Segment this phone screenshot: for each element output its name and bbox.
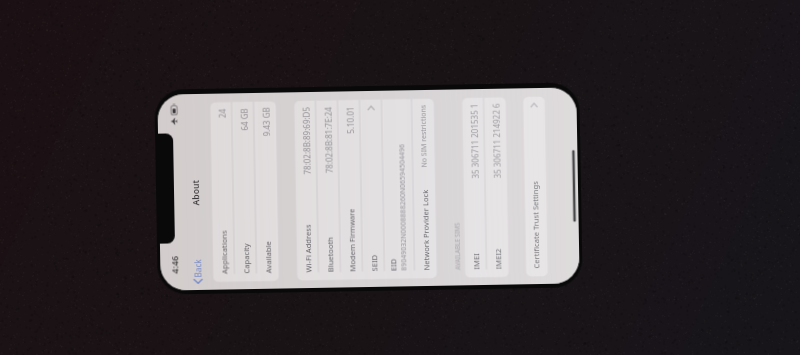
button[interactable]: EID [382,99,415,279]
button[interactable]: Capacity [232,101,257,282]
button[interactable]: Back [188,255,207,288]
staticText: 89049032N0008888260N06594504496 [397,144,409,271]
staticText: Back [192,258,203,278]
button[interactable]: Wi-Fi Address [294,100,319,281]
button[interactable]: IMEI2 [484,97,509,277]
button[interactable]: Certificate Trust Settings [523,96,548,277]
staticText: Wi-Fi Address [302,223,313,273]
staticText: 64 GB [238,108,249,131]
staticText: IMEI2 [493,248,503,269]
staticText: EID [388,258,398,271]
staticText: 35 306711 201535 1 [468,104,480,179]
staticText: SEID [369,254,379,271]
staticText: IMEI [471,253,481,270]
button[interactable]: IMEI [462,97,487,278]
staticText: Network Provider Lock [419,189,431,271]
button[interactable]: Available [254,101,279,281]
staticText: 5.10.01 [344,106,356,134]
staticText: 4:46 [168,256,180,274]
button[interactable]: Bluetooth [316,100,341,280]
staticText: Capacity [240,243,251,274]
staticText: AVAILABLE SIMS [452,222,461,270]
staticText: Bluetooth [324,236,335,272]
staticText: Modem Firmware [346,208,357,272]
staticText: Available [262,240,273,273]
staticText: 35 306711 214922 6 [490,103,502,178]
button[interactable]: Network Provider Lock [412,98,437,279]
staticText: No SIM restrictions [418,104,429,168]
button[interactable]: Applications [210,102,235,282]
staticText: 24 [216,108,227,118]
staticText: Certificate Trust Settings [530,180,542,269]
button[interactable]: Modem Firmware [338,100,363,280]
staticText: 9.43 GB [260,107,272,136]
staticText: Applications [218,230,229,274]
staticText: 78:02:8B:89:69:D5 [300,106,312,175]
staticText: 78:02:8B:81:7E:24 [322,106,334,173]
button[interactable]: SEID [360,99,385,280]
staticText: About [189,179,202,206]
